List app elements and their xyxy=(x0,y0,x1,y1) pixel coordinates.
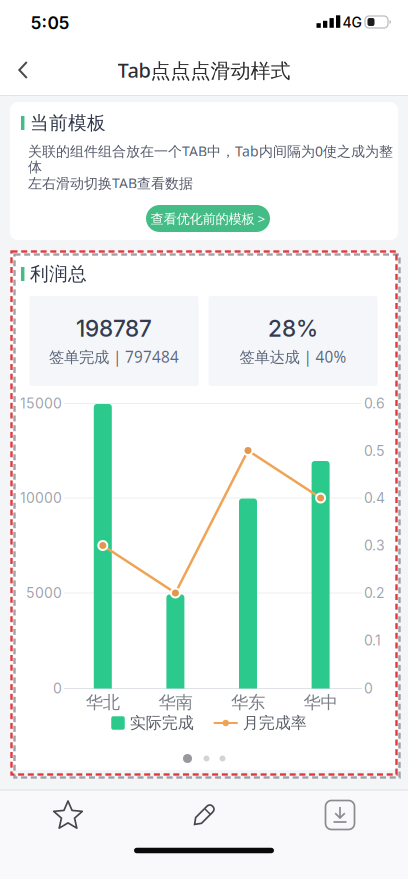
button[interactable]: Edit xyxy=(182,793,226,837)
staticText: 关联的组件组合放在一个TAB中，Tab内间隔为0使之成为整 xyxy=(28,141,393,161)
staticText: 月完成率 xyxy=(243,713,307,733)
staticText: 198787 xyxy=(76,315,152,342)
staticText: 0.3 xyxy=(364,537,385,554)
staticText: 当前模板 xyxy=(30,111,106,135)
staticText: 5000 xyxy=(26,584,62,601)
button[interactable]: 查看优化前的模板 > xyxy=(146,205,270,232)
staticText: 签单达成 | 40% xyxy=(239,346,346,367)
staticText: 0 xyxy=(364,680,373,697)
staticText: 左右滑动切换TAB查看数据 xyxy=(28,173,193,193)
staticText: 华东 xyxy=(231,692,265,713)
button[interactable]: Download xyxy=(318,793,362,837)
staticText: 5:05 xyxy=(30,12,69,33)
staticText: 4G xyxy=(342,14,361,31)
staticText: 15000 xyxy=(20,395,62,412)
staticText: 10000 xyxy=(20,489,62,506)
staticText: 华南 xyxy=(158,692,192,713)
staticText: 0.5 xyxy=(364,442,385,459)
staticText: 0.4 xyxy=(364,489,385,506)
staticText: 实际完成 xyxy=(130,713,194,733)
staticText: 0.2 xyxy=(364,584,385,601)
button[interactable]: Back xyxy=(1,48,45,92)
button[interactable]: Favorite xyxy=(46,793,90,837)
staticText: 查看优化前的模板 > xyxy=(150,209,265,228)
staticText: 0.6 xyxy=(364,395,385,412)
staticText: 0 xyxy=(53,680,62,697)
staticText: Tab点点点滑动样式 xyxy=(117,56,290,84)
staticText: 签单完成 | 797484 xyxy=(49,346,179,367)
staticText: 利润总 xyxy=(30,262,87,286)
staticText: 体 xyxy=(28,158,42,176)
staticText: 华北 xyxy=(86,692,120,713)
staticText: 28% xyxy=(268,315,318,342)
staticText: 华中 xyxy=(304,692,338,713)
staticText: 0.1 xyxy=(364,632,381,649)
